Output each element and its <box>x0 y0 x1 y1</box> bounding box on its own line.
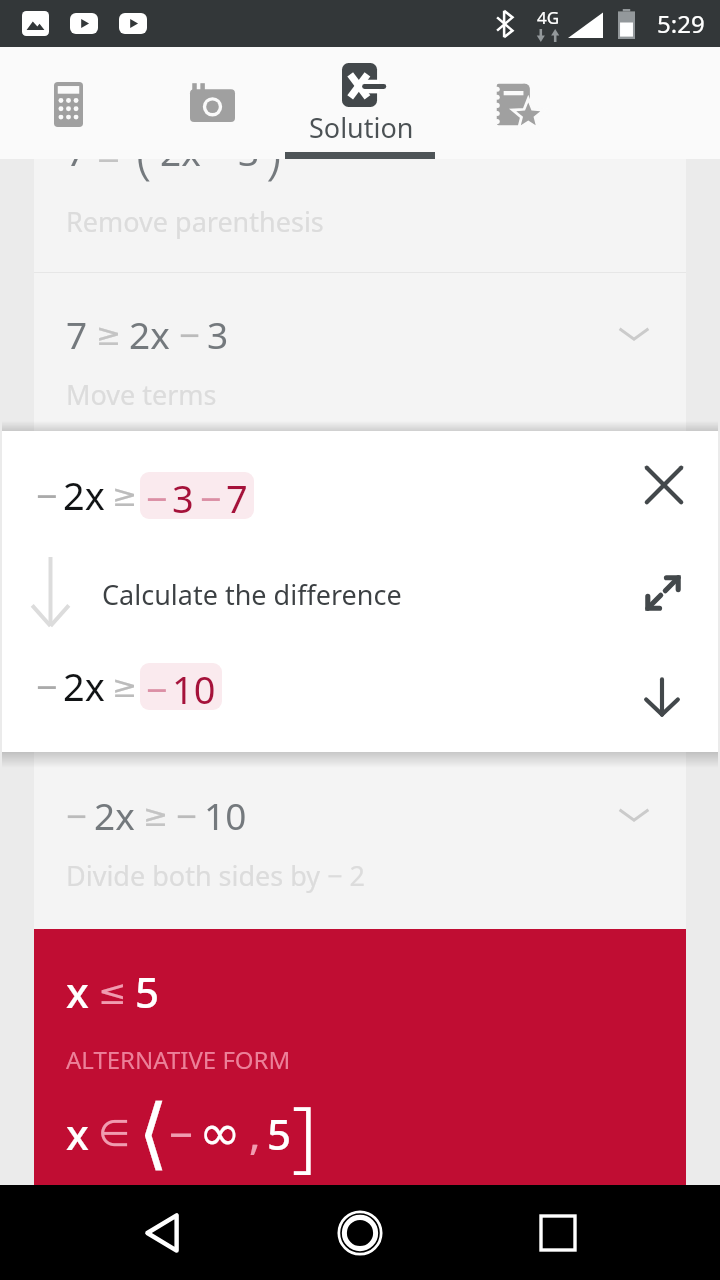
staticText: Calculate the difference <box>102 576 402 613</box>
staticText: − <box>200 472 222 519</box>
button[interactable]: Next step <box>626 661 698 733</box>
staticText: Solution <box>309 109 414 146</box>
staticText: ( <box>136 113 152 189</box>
button[interactable]: Solution <box>284 47 436 159</box>
staticText: 3 <box>238 126 260 176</box>
staticText: 5 <box>135 963 160 1020</box>
staticText: 7 <box>66 126 88 176</box>
staticText: − <box>36 660 58 712</box>
staticText: 10 <box>172 663 216 710</box>
staticText: ⟨ <box>138 1088 169 1179</box>
staticText: 5:29 <box>657 7 705 40</box>
staticText: ≥ <box>112 478 138 513</box>
staticText: ≥ <box>143 798 169 833</box>
staticText: 3 <box>207 309 229 359</box>
button[interactable]: Close <box>628 449 700 521</box>
staticText: 2x <box>129 309 170 359</box>
staticText: 7 <box>226 472 248 519</box>
staticText: − <box>146 663 168 710</box>
staticText: ∈ <box>98 1112 131 1155</box>
staticText: ≥ <box>96 134 122 169</box>
button[interactable]: Calculator <box>0 47 144 159</box>
staticText: 7 <box>66 309 88 359</box>
staticText: x <box>66 1105 89 1162</box>
staticText: x <box>66 963 89 1020</box>
button[interactable]: x <box>34 929 686 1185</box>
staticText: 3 <box>172 472 194 519</box>
staticText: Move terms <box>66 376 217 413</box>
staticText: − <box>146 472 168 519</box>
button[interactable]: Home <box>324 1197 396 1269</box>
staticText: 2x <box>160 126 201 176</box>
staticText: ALTERNATIVE FORM <box>66 1043 291 1076</box>
staticText: − <box>66 790 88 840</box>
button[interactable]: − <box>34 754 686 929</box>
staticText: ∞ <box>199 1104 241 1162</box>
staticText: ) <box>266 113 282 189</box>
staticText: 2x <box>94 790 135 840</box>
staticText: , <box>249 1105 261 1162</box>
staticText: − <box>36 469 58 521</box>
staticText: − <box>179 309 201 359</box>
button[interactable]: Expand <box>627 557 699 629</box>
staticText: 10 <box>204 790 247 840</box>
staticText: 2x <box>63 469 105 521</box>
button[interactable]: 7 <box>34 273 686 448</box>
staticText: 5 <box>267 1105 292 1162</box>
staticText: ≤ <box>98 972 127 1012</box>
button[interactable]: Recents <box>522 1197 594 1269</box>
staticText: Divide both sides by − 2 <box>66 857 366 894</box>
staticText: 4G <box>537 6 560 29</box>
button[interactable]: Back <box>126 1197 198 1269</box>
staticText: 2x <box>63 660 105 712</box>
staticText: ] <box>292 1080 318 1186</box>
staticText: − <box>169 1105 194 1162</box>
button[interactable]: Bookmarks <box>436 47 604 159</box>
staticText: − <box>176 790 198 840</box>
button[interactable]: Camera <box>144 47 284 159</box>
staticText: ≥ <box>96 317 122 352</box>
staticText: ≥ <box>112 669 138 704</box>
staticText: Remove parenthesis <box>66 203 324 240</box>
